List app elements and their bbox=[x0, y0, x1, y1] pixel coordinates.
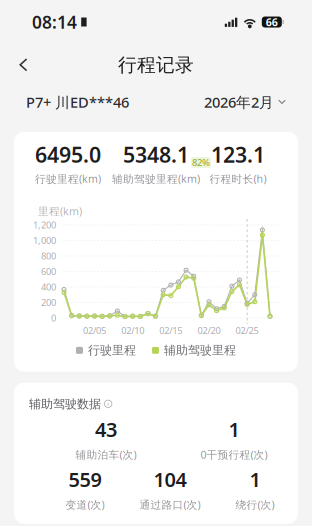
staticText: 绕行(次) bbox=[235, 497, 274, 512]
staticText: 600 bbox=[41, 265, 56, 278]
staticText: 0 bbox=[51, 312, 56, 324]
staticText: 800 bbox=[41, 250, 56, 262]
staticText: 辅助泊车(次) bbox=[75, 447, 136, 462]
staticText: 123.1 bbox=[211, 140, 265, 169]
staticText: 0干预行程(次) bbox=[200, 447, 267, 462]
staticText: 1 bbox=[228, 416, 239, 442]
button[interactable]: Back bbox=[0, 50, 42, 80]
staticText: 08:14 bbox=[32, 10, 77, 33]
staticText: 1,200 bbox=[33, 219, 56, 231]
staticText: 02/25 bbox=[236, 324, 259, 337]
staticText: 辅助驾驶里程 bbox=[164, 343, 236, 358]
staticText: 辅助驾驶数据 bbox=[29, 397, 101, 411]
staticText: 104 bbox=[153, 466, 186, 492]
staticText: 02/15 bbox=[159, 324, 182, 337]
staticText: 2026年2月 bbox=[204, 92, 274, 112]
staticText: 400 bbox=[41, 281, 56, 293]
staticText: 559 bbox=[68, 466, 101, 492]
staticText: 6495.0 bbox=[35, 140, 101, 169]
staticText: 行驶里程(km) bbox=[35, 172, 101, 186]
staticText: 辅助驾驶里程(km) bbox=[112, 172, 200, 186]
staticText: 1 bbox=[249, 466, 260, 492]
staticText: 200 bbox=[41, 296, 56, 309]
staticText: 66 bbox=[266, 15, 278, 29]
staticText: 通过路口(次) bbox=[139, 497, 200, 512]
staticText: 5348.1 bbox=[123, 140, 189, 169]
staticText: 82% bbox=[192, 156, 210, 169]
staticText: 1,000 bbox=[33, 234, 56, 247]
staticText: 02/05 bbox=[83, 324, 106, 337]
staticText: 行程时长(h) bbox=[209, 172, 266, 186]
staticText: 里程(km) bbox=[38, 204, 82, 218]
button[interactable]: 2026年2月 bbox=[204, 92, 286, 112]
staticText: 行程记录 bbox=[118, 53, 194, 76]
staticText: P7+ 川ED***46 bbox=[26, 92, 129, 112]
staticText: 43 bbox=[95, 416, 117, 442]
staticText: 变道(次) bbox=[65, 497, 104, 512]
staticText: 行驶里程 bbox=[88, 343, 136, 358]
staticText: 02/10 bbox=[121, 324, 144, 337]
staticText: 02/20 bbox=[197, 324, 220, 337]
